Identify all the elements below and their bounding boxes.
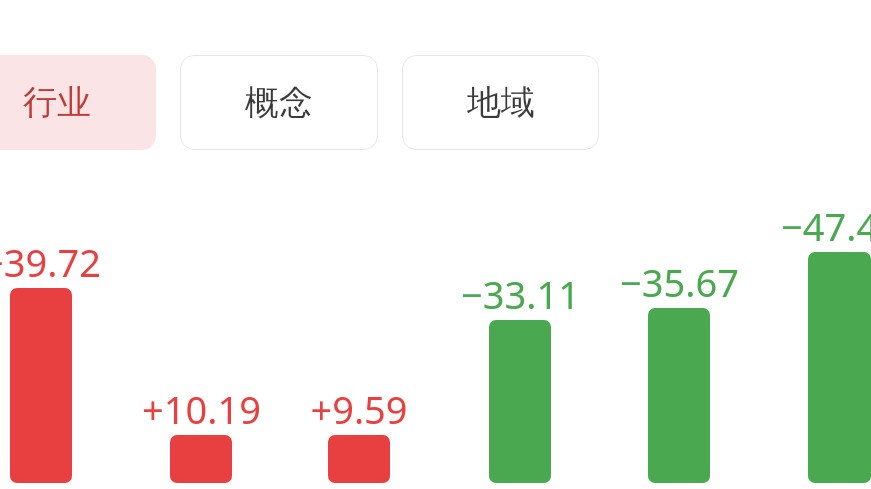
staticText: 行业 (23, 81, 91, 124)
staticText: −33.11 (461, 268, 580, 314)
button[interactable]: 概念 (180, 55, 378, 150)
staticText: 地域 (467, 81, 535, 124)
staticText: +39.72 (0, 236, 101, 282)
staticText: +10.19 (142, 383, 261, 429)
staticText: 概念 (245, 81, 313, 124)
button[interactable]: 地域 (402, 55, 599, 150)
staticText: +9.59 (310, 383, 408, 429)
staticText: −35.67 (620, 256, 739, 302)
staticText: −47.48 (781, 200, 871, 246)
button[interactable]: 行业 (0, 55, 156, 150)
